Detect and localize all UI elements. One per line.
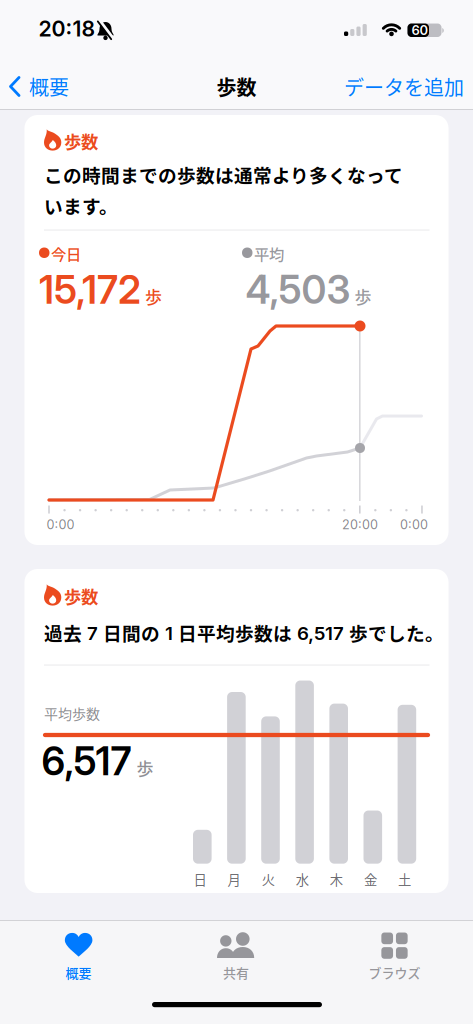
staticText: 20:00 (342, 517, 378, 532)
staticText: 金 (364, 869, 377, 889)
staticText: ブラウズ (368, 963, 420, 982)
staticText: 概要 (29, 72, 69, 101)
staticText: 6,517 (41, 738, 131, 785)
button[interactable]: 概要 (8, 72, 69, 101)
staticText: 歩数 (64, 583, 98, 609)
staticText: 歩数 (216, 72, 256, 101)
staticText: 歩 (136, 755, 153, 780)
staticText: 15,172 (39, 266, 141, 313)
staticText: 月 (228, 869, 241, 889)
staticText: 0:00 (46, 517, 74, 532)
button[interactable]: データを追加 (344, 72, 464, 101)
staticText: 日 (193, 869, 206, 889)
staticText: 平均歩数 (44, 703, 100, 723)
staticText: 平均 (254, 242, 284, 265)
staticText: 20:18 (38, 16, 95, 42)
staticText: 歩数 (64, 128, 98, 154)
staticText: 火 (262, 869, 275, 889)
staticText: 水 (296, 869, 309, 889)
staticText: 過去 7 日間の 1 日平均歩数は 6,517 歩でした。 (44, 619, 444, 646)
staticText: 歩 (145, 284, 162, 309)
staticText: 概要 (65, 963, 91, 982)
staticText: 歩 (354, 284, 371, 309)
staticText: 60 (411, 22, 428, 38)
staticText: 0:00 (400, 517, 428, 532)
button[interactable]: ブラウズ (334, 932, 454, 982)
staticText: データを追加 (344, 72, 464, 101)
staticText: 土 (398, 869, 411, 889)
staticText: 今日 (51, 242, 81, 265)
staticText: 4,503 (245, 266, 350, 313)
staticText: この時間までの歩数は通常より多くなっています。 (44, 161, 403, 219)
staticText: 共有 (223, 963, 249, 982)
staticText: 木 (330, 869, 343, 889)
button[interactable]: 共有 (176, 932, 296, 982)
button[interactable]: 概要 (18, 932, 138, 982)
